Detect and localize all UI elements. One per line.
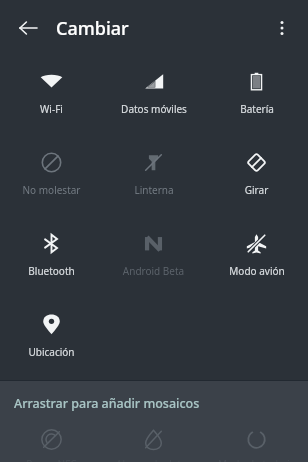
button[interactable]: Modo avión — [205, 218, 308, 299]
staticText: Batería — [240, 102, 274, 116]
button[interactable]: Datos móviles — [102, 56, 205, 137]
button[interactable]: Back — [8, 8, 48, 48]
button[interactable]: Batería — [205, 56, 308, 137]
button[interactable]: Pagos NFC — [0, 418, 102, 462]
staticText: Wi-Fi — [40, 102, 63, 116]
staticText: Ubicación — [28, 345, 75, 359]
staticText: Linterna — [134, 183, 174, 197]
button[interactable]: Ahorro de datos — [102, 418, 205, 462]
button[interactable]: Android Beta Program — [102, 218, 205, 299]
button[interactable]: More options — [262, 8, 302, 48]
button[interactable]: No molestar — [0, 137, 102, 218]
staticText: Girar automáticamente — [207, 183, 306, 197]
staticText: Bluetooth — [28, 264, 75, 278]
button[interactable]: Bluetooth — [0, 218, 102, 299]
staticText: Android Beta Program — [104, 264, 203, 278]
button[interactable]: Linterna — [102, 137, 205, 218]
staticText: No molestar — [22, 183, 81, 197]
staticText: Datos móviles — [121, 102, 187, 116]
button[interactable]: Wi-Fi — [0, 56, 102, 137]
button[interactable]: Ubicación — [0, 299, 102, 380]
staticText: Arrastrar para añadir mosaicos — [14, 395, 200, 412]
button[interactable]: Girar automáticamente — [205, 137, 308, 218]
staticText: Cambiar — [56, 16, 129, 41]
staticText: Modo avión — [229, 264, 285, 278]
button[interactable]: Modo de trabajo — [205, 418, 308, 462]
